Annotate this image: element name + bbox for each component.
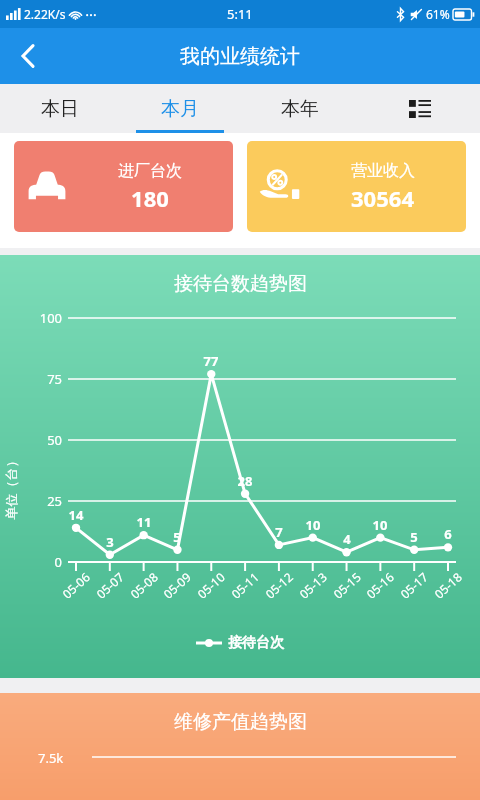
staticText: 05-15 bbox=[330, 568, 364, 602]
staticText: 3 bbox=[96, 533, 124, 551]
staticText: 05-08 bbox=[127, 568, 161, 602]
staticText: 0 bbox=[26, 553, 62, 571]
staticText: 维修产值趋势图 bbox=[174, 710, 307, 734]
staticText: 进厂台次 bbox=[118, 161, 182, 181]
staticText: 05-07 bbox=[93, 568, 127, 602]
staticText: 5:11 bbox=[227, 5, 253, 23]
staticText: 05-13 bbox=[296, 568, 330, 602]
staticText: 5 bbox=[163, 528, 191, 546]
button[interactable]: 进厂台次 bbox=[14, 141, 233, 232]
button[interactable]: 营业收入 bbox=[247, 141, 466, 232]
staticText: 7 bbox=[265, 523, 293, 541]
staticText: 05-11 bbox=[228, 568, 262, 602]
button[interactable]: 本月 bbox=[120, 84, 240, 133]
staticText: 05-12 bbox=[262, 568, 296, 602]
staticText: 14 bbox=[62, 506, 90, 524]
staticText: 61% bbox=[426, 6, 450, 22]
staticText: 05-16 bbox=[363, 568, 397, 602]
staticText: 05-18 bbox=[431, 568, 465, 602]
staticText: 05-10 bbox=[194, 568, 228, 602]
staticText: 05-06 bbox=[59, 568, 93, 602]
staticText: 7.5k bbox=[38, 749, 64, 767]
staticText: 75 bbox=[26, 370, 62, 388]
staticText: 单位（台） bbox=[2, 454, 18, 519]
staticText: 25 bbox=[26, 492, 62, 510]
staticText: 10 bbox=[299, 516, 327, 534]
button[interactable]: Back bbox=[4, 32, 52, 80]
staticText: 5 bbox=[400, 528, 428, 546]
staticText: 本月 bbox=[161, 97, 199, 121]
staticText: 11 bbox=[130, 513, 158, 531]
staticText: 50 bbox=[26, 431, 62, 449]
staticText: 6 bbox=[434, 525, 462, 543]
staticText: 本日 bbox=[41, 97, 79, 121]
button[interactable]: 本日 bbox=[0, 84, 120, 133]
staticText: 2.22K/s bbox=[24, 6, 66, 22]
staticText: 4 bbox=[333, 530, 361, 548]
button[interactable]: List view bbox=[360, 84, 480, 133]
staticText: 营业收入 bbox=[351, 161, 415, 181]
staticText: 10 bbox=[366, 516, 394, 534]
staticText: 本年 bbox=[281, 97, 319, 121]
staticText: 77 bbox=[197, 352, 225, 370]
staticText: 05-09 bbox=[160, 568, 194, 602]
staticText: 接待台数趋势图 bbox=[174, 272, 307, 296]
staticText: 我的业绩统计 bbox=[180, 44, 300, 69]
staticText: 180 bbox=[131, 183, 169, 213]
staticText: 30564 bbox=[351, 183, 414, 213]
staticText: 05-17 bbox=[397, 568, 431, 602]
staticText: 100 bbox=[26, 309, 62, 327]
button[interactable]: 本年 bbox=[240, 84, 360, 133]
staticText: 接待台次 bbox=[228, 634, 284, 652]
staticText: 28 bbox=[231, 472, 259, 490]
